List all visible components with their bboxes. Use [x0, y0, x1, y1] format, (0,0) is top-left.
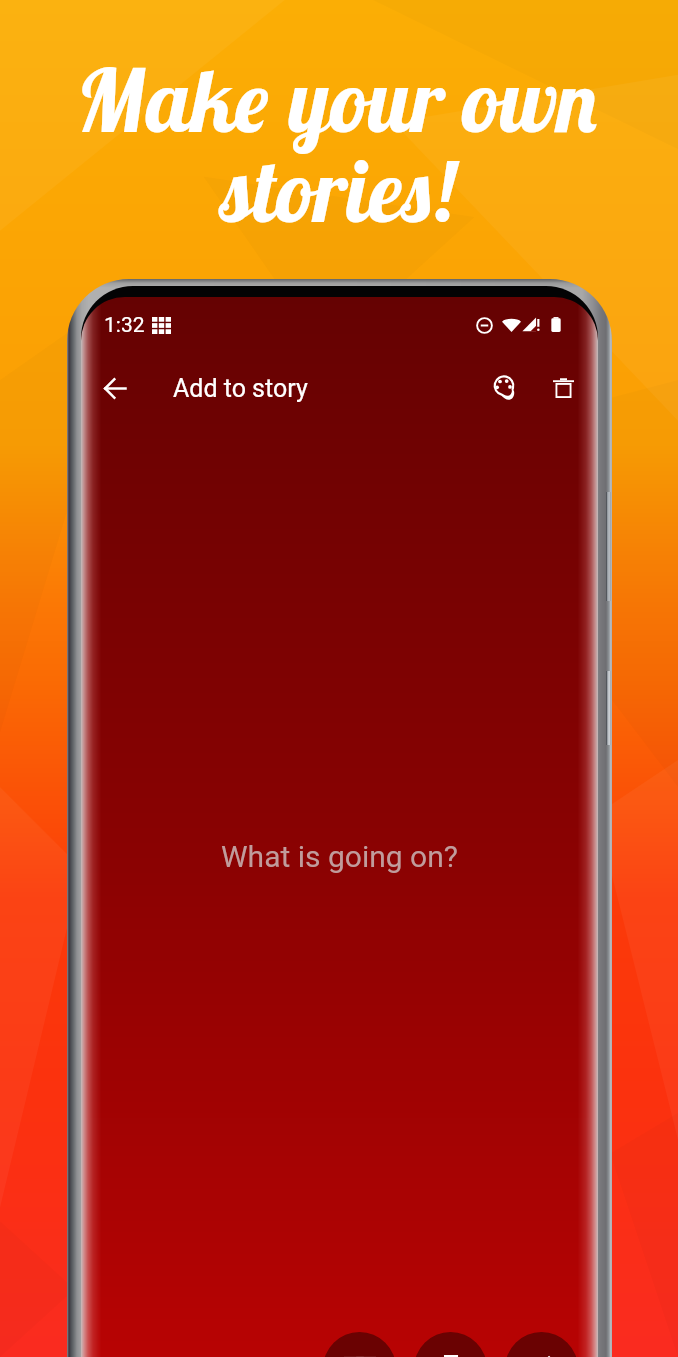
button[interactable]: Add text [323, 1332, 396, 1357]
button[interactable]: Color palette [483, 366, 527, 410]
staticText: 1:32 [104, 313, 145, 338]
button[interactable]: Add sticker [414, 1332, 487, 1357]
staticText: Make your own stories! [77, 46, 601, 244]
button[interactable]: Delete [541, 366, 585, 410]
button[interactable]: Back [93, 366, 137, 410]
staticText: Add to story [173, 374, 308, 403]
button[interactable]: Draw [505, 1332, 578, 1357]
staticText: What is going on? [221, 839, 458, 874]
